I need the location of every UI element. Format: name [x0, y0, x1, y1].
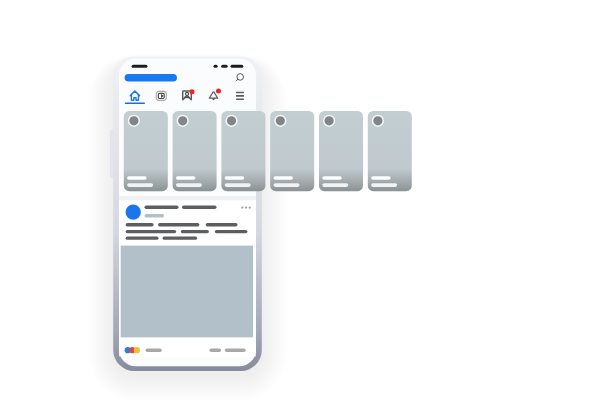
button[interactable]: Menu	[232, 87, 248, 104]
button[interactable]: Story 2	[173, 111, 217, 191]
button[interactable]: Search	[125, 72, 177, 84]
button[interactable]: Search	[233, 70, 247, 84]
button[interactable]: Story 5	[319, 111, 363, 191]
button[interactable]: Friends	[179, 87, 195, 104]
button[interactable]: Story 1	[124, 111, 168, 191]
button[interactable]: Watch videos	[153, 87, 169, 104]
button[interactable]: Home	[127, 87, 143, 104]
button[interactable]: Story 4	[270, 111, 314, 191]
button[interactable]: Post author	[125, 204, 225, 221]
button[interactable]: Post photo	[121, 246, 253, 338]
button[interactable]: Notifications	[206, 87, 222, 104]
button[interactable]: Story 6	[368, 111, 412, 191]
button[interactable]: Comment and share	[205, 344, 248, 357]
button[interactable]: Story 3	[221, 111, 265, 191]
button[interactable]: Reactions	[124, 344, 164, 357]
button[interactable]: More options	[236, 202, 248, 212]
